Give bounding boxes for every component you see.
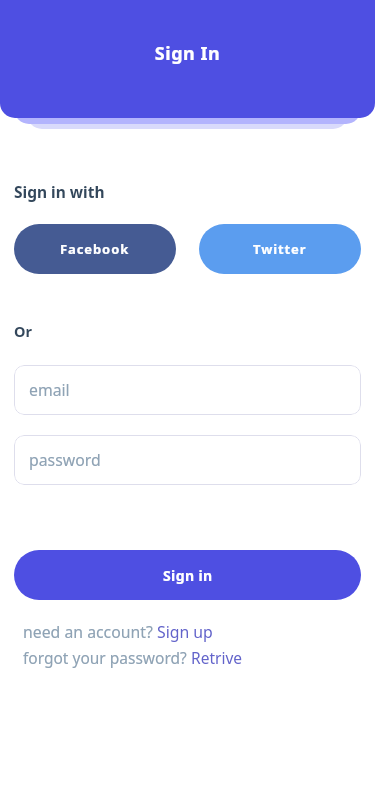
button[interactable]: Facebook	[14, 224, 176, 274]
button[interactable]: Sign up	[157, 621, 213, 643]
staticText: Facebook	[60, 240, 130, 258]
button[interactable]: password	[14, 435, 361, 485]
staticText: email	[29, 379, 70, 401]
button[interactable]: Twitter	[199, 224, 361, 274]
staticText: Sign In	[0, 41, 375, 66]
staticText: need an account?	[23, 621, 157, 643]
staticText: Sign in with	[14, 181, 105, 202]
staticText: Or	[14, 321, 32, 341]
staticText: Twitter	[253, 240, 307, 258]
staticText: Retrive	[191, 647, 242, 668]
button[interactable]: email	[14, 365, 361, 415]
button[interactable]: Retrive	[191, 647, 242, 668]
button[interactable]: Sign in	[14, 550, 361, 600]
staticText: password	[29, 449, 101, 471]
staticText: Sign up	[157, 621, 213, 643]
staticText: forgot your password?	[23, 647, 191, 668]
staticText: Sign in	[163, 566, 213, 585]
